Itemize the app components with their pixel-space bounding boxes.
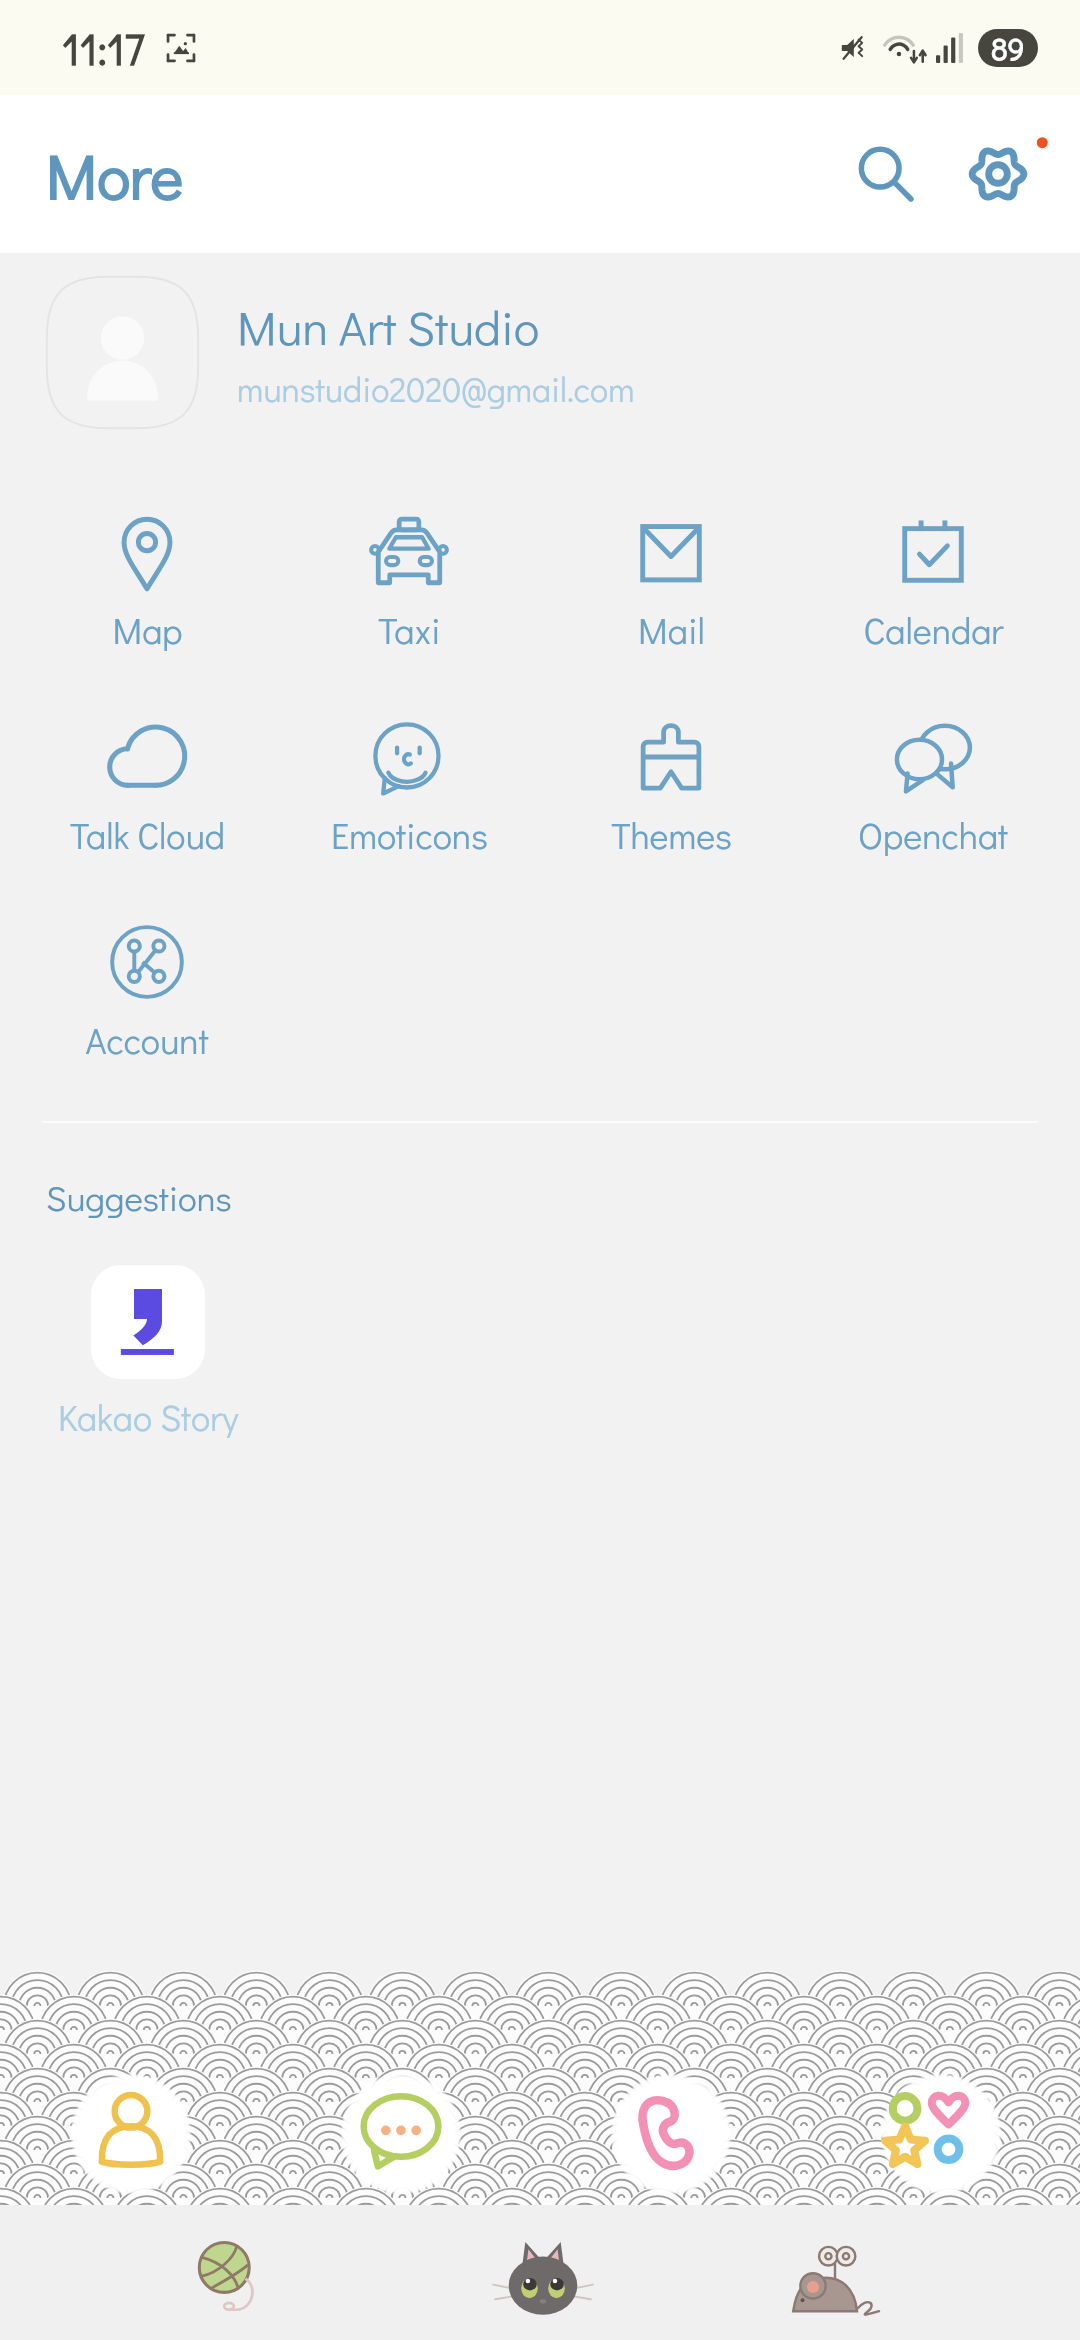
staticText: Taxi <box>378 606 441 653</box>
staticText: More <box>46 134 184 215</box>
button[interactable] <box>91 1265 205 1379</box>
staticText: Openchat <box>858 811 1008 858</box>
staticText: munstudio2020@gmail.com <box>237 366 635 411</box>
button[interactable]: More <box>870 2063 1020 2205</box>
staticText: Mun Art Studio <box>237 295 540 358</box>
staticText: Suggestions <box>46 1174 232 1220</box>
button[interactable]: Chats <box>330 2063 480 2205</box>
button[interactable]: Call <box>600 2063 750 2205</box>
button[interactable]: Openchat <box>802 712 1064 862</box>
staticText: Themes <box>611 811 732 858</box>
button[interactable]: Mun Art Studio <box>0 272 1080 433</box>
button[interactable]: Emoticons <box>278 712 540 862</box>
button[interactable]: Mail <box>540 507 802 657</box>
button[interactable]: Friends <box>60 2063 210 2205</box>
staticText: Emoticons <box>331 811 488 858</box>
button[interactable]: Talk Cloud <box>16 712 278 862</box>
button[interactable]: Account <box>16 917 278 1067</box>
button[interactable]: Settings <box>942 118 1054 230</box>
button[interactable]: Map <box>16 507 278 657</box>
staticText: Talk Cloud <box>70 811 225 858</box>
staticText: Kakao Story <box>58 1393 239 1440</box>
staticText: Account <box>85 1016 209 1063</box>
button[interactable]: Taxi <box>278 507 540 657</box>
staticText: 11:17 <box>62 20 145 76</box>
button[interactable]: Search <box>830 118 942 230</box>
staticText: Calendar <box>863 606 1004 653</box>
button[interactable]: Calendar <box>802 507 1064 657</box>
staticText: Mail <box>638 606 705 653</box>
staticText: 89 <box>991 29 1025 67</box>
staticText: Map <box>112 606 183 653</box>
button[interactable]: Themes <box>540 712 802 862</box>
